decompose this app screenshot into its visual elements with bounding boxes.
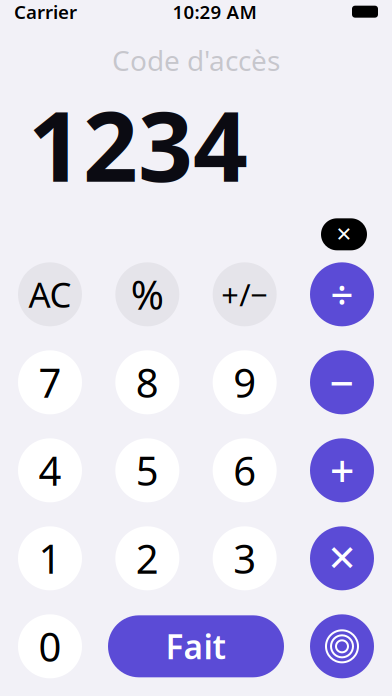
button[interactable]: 0 [18,614,82,678]
staticText: 1 [38,532,61,585]
staticText: % [131,268,164,321]
staticText: 1234 [28,81,248,208]
button[interactable]: Minus [310,350,374,414]
staticText: ✕ [335,223,352,246]
staticText: 6 [233,444,256,497]
button[interactable]: AC [18,262,82,326]
staticText: 8 [136,356,159,409]
button[interactable]: 9 [213,350,277,414]
staticText: Fait [165,624,226,668]
staticText: 4 [38,444,61,497]
staticText: 3 [233,532,256,585]
button[interactable]: Divide [310,262,374,326]
button[interactable]: 7 [18,350,82,414]
button[interactable]: 6 [213,438,277,502]
button[interactable]: Fait [108,615,284,677]
staticText: 10:29 AM [172,0,256,24]
staticText: Code d'accès [112,42,280,79]
staticText: 7 [38,356,61,409]
button[interactable]: Fingerprint [310,614,374,678]
button[interactable]: 3 [213,526,277,590]
staticText: ÷ [330,268,353,321]
staticText: 5 [136,444,159,497]
button[interactable]: 8 [115,350,179,414]
staticText: + [330,442,354,499]
button[interactable]: Multiply [310,526,374,590]
button[interactable]: 1 [18,526,82,590]
staticText: Carrier [14,0,77,24]
button[interactable]: % [115,262,179,326]
staticText: − [329,354,354,411]
staticText: ✕ [327,538,357,579]
button[interactable]: +/− [213,262,277,326]
button[interactable]: 2 [115,526,179,590]
staticText: +/− [221,274,268,315]
button[interactable]: 5 [115,438,179,502]
button[interactable]: Plus [310,438,374,502]
staticText: 9 [233,356,256,409]
button[interactable]: 4 [18,438,82,502]
staticText: AC [28,271,71,317]
staticText: 0 [38,620,61,673]
staticText: 2 [136,532,159,585]
button[interactable]: Delete [318,214,370,254]
